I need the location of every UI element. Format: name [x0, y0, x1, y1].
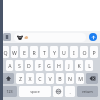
staticText: H: [57, 62, 61, 69]
button[interactable]: Z: [16, 73, 24, 84]
staticText: I: [73, 49, 75, 56]
button[interactable]: Emoji keyboard: [53, 86, 63, 97]
button[interactable]: Backspace: [86, 73, 98, 84]
staticText: N: [68, 75, 72, 82]
staticText: D: [27, 62, 31, 69]
staticText: return: [82, 89, 93, 94]
staticText: U: [62, 49, 66, 56]
staticText: B: [58, 75, 62, 82]
button[interactable]: [14, 33, 86, 42]
button[interactable]: space: [19, 86, 51, 97]
button[interactable]: D: [25, 60, 33, 71]
staticText: T: [43, 49, 46, 56]
staticText: L: [88, 62, 91, 69]
staticText: Z: [19, 75, 22, 82]
staticText: .: [69, 89, 71, 95]
staticText: J: [68, 62, 70, 69]
staticText: space: [30, 89, 40, 94]
button[interactable]: R: [30, 46, 38, 58]
button[interactable]: S: [15, 60, 23, 71]
staticText: R: [32, 49, 36, 56]
button[interactable]: L: [85, 60, 93, 71]
staticText: A: [8, 62, 12, 69]
button[interactable]: Send: [89, 33, 97, 41]
button[interactable]: P: [90, 46, 98, 58]
button[interactable]: Apps: [3, 33, 11, 41]
staticText: S: [18, 62, 21, 69]
staticText: V: [48, 75, 52, 82]
staticText: G: [47, 62, 51, 69]
staticText: E: [23, 49, 26, 56]
button[interactable]: J: [65, 60, 73, 71]
button[interactable]: B: [56, 73, 64, 84]
button[interactable]: return: [77, 86, 98, 97]
button[interactable]: N: [66, 73, 74, 84]
staticText: W: [12, 49, 17, 56]
staticText: C: [38, 75, 42, 82]
staticText: O: [82, 49, 87, 56]
button[interactable]: Q: [2, 46, 9, 58]
staticText: M: [78, 75, 83, 82]
button[interactable]: 123: [2, 86, 17, 97]
button[interactable]: F: [35, 60, 43, 71]
button[interactable]: E: [20, 46, 28, 58]
button[interactable]: O: [80, 46, 88, 58]
button[interactable]: W: [11, 46, 18, 58]
staticText: P: [92, 49, 96, 56]
button[interactable]: Shift: [2, 73, 14, 84]
button[interactable]: I: [70, 46, 78, 58]
staticText: X: [28, 75, 32, 82]
button[interactable]: .: [65, 86, 75, 97]
button[interactable]: V: [46, 73, 54, 84]
button[interactable]: Y: [50, 46, 58, 58]
staticText: 123: [6, 89, 13, 94]
button[interactable]: A: [6, 60, 13, 71]
button[interactable]: H: [55, 60, 63, 71]
button[interactable]: K: [75, 60, 83, 71]
button[interactable]: M: [76, 73, 84, 84]
button[interactable]: C: [36, 73, 44, 84]
button[interactable]: X: [26, 73, 34, 84]
button[interactable]: T: [40, 46, 48, 58]
staticText: Y: [53, 49, 56, 56]
staticText: Q: [3, 49, 8, 56]
staticText: K: [77, 62, 81, 69]
button[interactable]: G: [45, 60, 53, 71]
staticText: F: [38, 62, 41, 69]
button[interactable]: U: [60, 46, 68, 58]
